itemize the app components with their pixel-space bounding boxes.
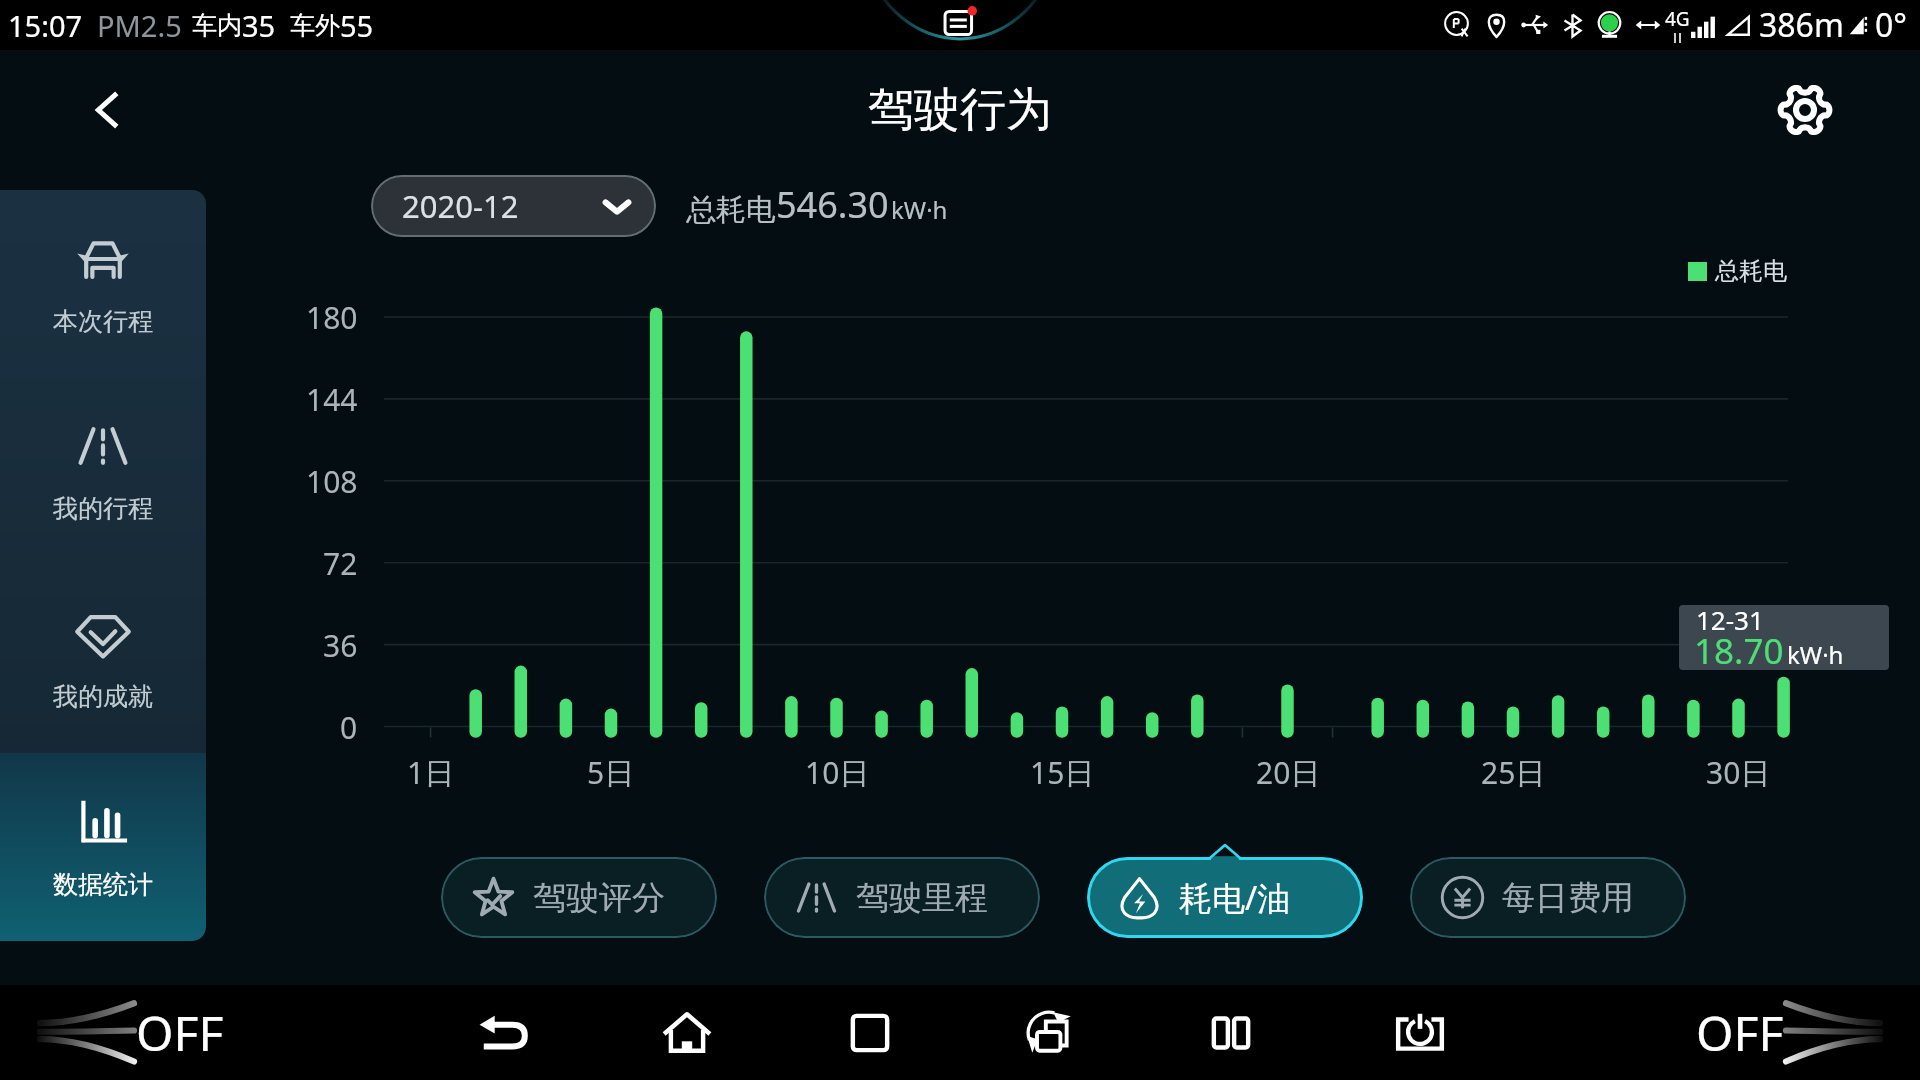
staticText: 我的行程 (53, 493, 153, 524)
button[interactable]: Left fan off (38, 1000, 224, 1065)
button[interactable]: Recents (830, 993, 910, 1073)
staticText: 386m (1759, 3, 1844, 47)
button[interactable]: 耗电/油 (1087, 857, 1363, 938)
staticText: 36 (323, 625, 358, 666)
staticText: kW·h (1787, 638, 1844, 670)
staticText: 180 (306, 297, 358, 338)
button[interactable]: 我的行程 (0, 377, 206, 565)
staticText: 2020-12 (402, 185, 519, 227)
staticText: 15:07 (8, 6, 83, 45)
staticText: 每日费用 (1502, 877, 1634, 919)
staticText: 0° (1875, 3, 1908, 47)
staticText: 本次行程 (53, 306, 153, 337)
staticText: 18.70 (1694, 627, 1784, 670)
staticText: 72 (323, 543, 358, 584)
staticText: 10日 (805, 752, 870, 793)
staticText: 5日 (587, 752, 635, 793)
button[interactable]: 每日费用 (1410, 857, 1686, 938)
staticText: 15日 (1030, 752, 1095, 793)
button[interactable]: 2020-12 (371, 175, 656, 237)
staticText: 驾驶行为 (868, 81, 1052, 139)
button[interactable]: Power (1380, 993, 1460, 1073)
staticText: 我的成就 (53, 681, 153, 712)
staticText: 12-31 (1696, 605, 1764, 637)
staticText: 55 (340, 6, 374, 45)
staticText: OFF (1696, 1000, 1784, 1065)
staticText: 总耗电 (686, 191, 776, 229)
button[interactable]: 数据统计 (0, 753, 206, 941)
button[interactable]: 本次行程 (0, 190, 206, 377)
button[interactable]: Settings (1772, 77, 1838, 143)
button[interactable]: Back (463, 993, 543, 1073)
staticText: 驾驶评分 (533, 877, 665, 919)
staticText: kW·h (891, 193, 948, 226)
button[interactable]: Right fan off (1696, 1000, 1882, 1065)
staticText: OFF (136, 1000, 224, 1065)
button[interactable]: 驾驶里程 (764, 857, 1040, 938)
button[interactable]: 驾驶评分 (441, 857, 717, 938)
staticText: 车内 (192, 10, 242, 41)
staticText: 144 (306, 379, 358, 420)
staticText: 车外 (290, 10, 340, 41)
staticText: 总耗电 (1715, 256, 1787, 286)
button[interactable]: 我的成就 (0, 565, 206, 753)
button[interactable]: Home (647, 993, 727, 1073)
staticText: 20日 (1256, 752, 1321, 793)
staticText: 驾驶里程 (856, 877, 988, 919)
staticText: 30日 (1706, 752, 1771, 793)
button[interactable]: Back (78, 80, 138, 140)
staticText: 108 (306, 461, 358, 502)
staticText: 耗电/油 (1179, 875, 1291, 920)
button[interactable]: App switch (1010, 993, 1090, 1073)
staticText: PM2.5 (97, 6, 182, 45)
staticText: 1日 (407, 752, 455, 793)
button[interactable]: Split screen (1191, 993, 1271, 1073)
staticText: 25日 (1481, 752, 1546, 793)
staticText: 数据统计 (53, 869, 153, 900)
staticText: 0 (340, 707, 358, 748)
staticText: 4G (1665, 6, 1690, 32)
staticText: 35 (242, 6, 276, 45)
staticText: 546.30 (776, 180, 889, 229)
